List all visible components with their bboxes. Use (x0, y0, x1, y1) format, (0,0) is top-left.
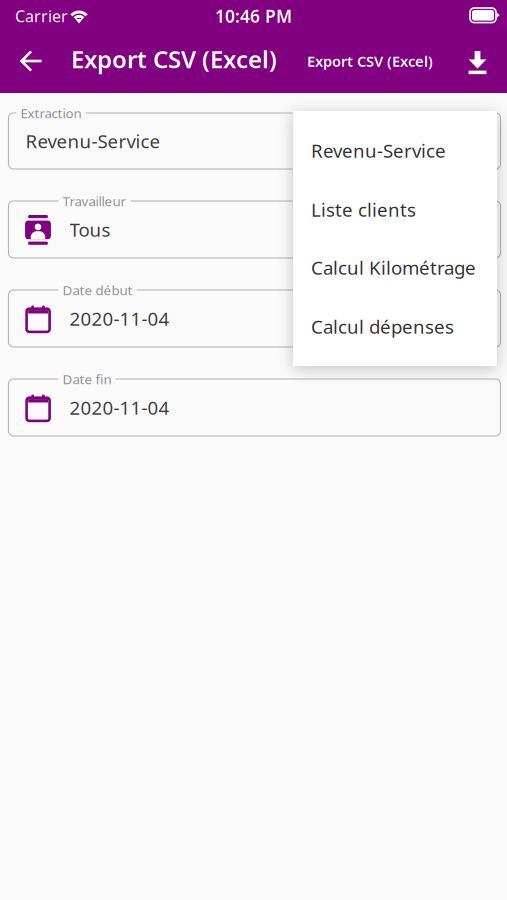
button[interactable]: Back (16, 46, 46, 76)
button[interactable]: Revenu-Service (8, 113, 500, 169)
button[interactable]: Calcul Kilométrage (293, 238, 497, 297)
staticText: Extraction (20, 104, 81, 122)
staticText: Date début (62, 281, 132, 299)
staticText: Calcul dépenses (311, 314, 454, 339)
staticText: 10:46 PM (215, 4, 292, 27)
staticText: Export CSV (Excel) (307, 51, 433, 71)
staticText: Tous (69, 217, 110, 242)
button[interactable]: 2020-11-04 (8, 290, 500, 347)
staticText: Date fin (62, 370, 111, 388)
staticText: Carrier (15, 5, 68, 27)
button[interactable]: Export CSV (Excel) (307, 48, 452, 74)
staticText: Travailleur (62, 192, 126, 210)
button[interactable]: Revenu-Service (293, 121, 497, 180)
staticText: 2020-11-04 (69, 395, 169, 420)
staticText: Revenu-Service (25, 129, 160, 153)
staticText: 2020-11-04 (69, 306, 169, 331)
staticText: Export CSV (Excel) (71, 43, 277, 75)
button[interactable]: Calcul dépenses (293, 297, 497, 356)
staticText: Revenu-Service (311, 138, 446, 163)
button[interactable]: Download (456, 43, 500, 83)
staticText: Liste clients (311, 197, 416, 222)
button[interactable]: 2020-11-04 (8, 379, 500, 436)
staticText: Calcul Kilométrage (311, 255, 476, 280)
button[interactable]: Liste clients (293, 180, 497, 239)
button[interactable]: Tous (8, 201, 500, 258)
